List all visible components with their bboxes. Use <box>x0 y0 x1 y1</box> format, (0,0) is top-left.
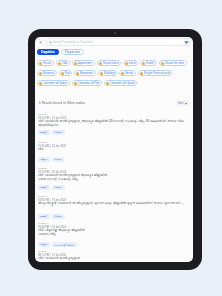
staticText: സ്ഥലം <box>54 186 63 189</box>
staticText: Apartment <box>78 61 93 65</box>
button[interactable]: House for rent <box>159 60 187 66</box>
button[interactable]: Back <box>38 40 43 45</box>
staticText: Property <box>38 250 48 253</box>
button[interactable]: സ്ഥലം <box>52 214 65 219</box>
staticText: 10:05 AM | 22 Jan 2024 <box>38 144 67 148</box>
staticText: 09:40 PM | 18 Jan 2024 <box>38 225 67 229</box>
staticText: Commercial House <box>110 81 135 85</box>
staticText: House for rent <box>165 61 185 65</box>
button[interactable]: Property <box>35 167 193 191</box>
staticText: 07:53 PM | 20 Jan 2024 <box>38 170 67 174</box>
staticText: Sort <box>178 101 184 105</box>
staticText: വില്പന <box>40 158 48 161</box>
staticText: Villa <box>62 61 68 65</box>
staticText: അപ്പാർട്ട്മെന്റ് വാങ്ങാൻ താൽപ്പര്യമുണ്ട്… <box>38 201 188 205</box>
button[interactable]: വില്പന <box>38 157 50 162</box>
button[interactable]: Business <box>37 70 57 76</box>
staticText: Business <box>43 71 55 75</box>
staticText: Property <box>38 195 48 198</box>
button[interactable]: Single Portion Land <box>138 70 172 76</box>
staticText: House <box>43 61 52 65</box>
staticText: Single Portion Land <box>144 71 170 75</box>
staticText: Properties <box>65 50 80 54</box>
button[interactable]: Commercial Space <box>37 80 70 86</box>
staticText: 07:23 PM | 23 Jan 2024 <box>38 116 67 120</box>
staticText: Search Properties or Enquiries <box>53 40 93 44</box>
button[interactable]: Villa <box>56 60 70 66</box>
button[interactable]: House Land <box>97 60 121 66</box>
button[interactable]: ബജറ്റ് <box>38 214 50 219</box>
staticText: Commercial Plot <box>78 81 100 85</box>
button[interactable]: Apartment <box>72 60 95 66</box>
staticText: 04:05 PM | 19 Jan 2024 <box>38 198 67 202</box>
button[interactable]: വാടക <box>52 157 64 162</box>
button[interactable]: Land <box>123 60 138 66</box>
button[interactable]: Basement <box>74 70 96 76</box>
staticText: വീട് <box>38 147 44 150</box>
staticText: 10 സെന്റ് സ്ഥലം <box>54 243 75 246</box>
staticText: വില്പന <box>40 243 48 246</box>
staticText: Commercial Space <box>43 81 68 85</box>
button[interactable]: Enquiries <box>37 49 59 55</box>
button[interactable]: Search Properties or Enquiries <box>46 38 190 46</box>
button[interactable]: Property <box>35 113 193 136</box>
staticText: വീട് വാങ്ങാൻ താൽപ്പര്യമുണ്ട് <box>38 256 80 260</box>
button[interactable]: Commercial Plot <box>72 80 102 86</box>
button[interactable]: Sort <box>176 100 189 106</box>
staticText: Enquiries <box>41 50 55 54</box>
staticText: Property <box>38 113 48 116</box>
staticText: ബജറ്റ് <box>40 186 48 189</box>
staticText: വാടക <box>54 158 62 161</box>
staticText: Property <box>38 141 48 144</box>
staticText: Property <box>38 167 48 170</box>
staticText: Hostel <box>146 61 155 65</box>
button[interactable]: Resort <box>119 70 136 76</box>
button[interactable]: Commercial House <box>104 80 137 86</box>
button[interactable]: വില്പന <box>38 242 50 247</box>
button[interactable]: ബജറ്റ് <box>38 185 50 190</box>
staticText: 08:12 PM | 16 Jan 2024 <box>38 253 67 257</box>
button[interactable]: Flat <box>59 70 72 76</box>
staticText: Land <box>129 61 136 65</box>
button[interactable]: Property <box>35 250 193 262</box>
staticText: Resort <box>125 71 134 75</box>
staticText: Basement <box>80 71 94 75</box>
button[interactable]: 10 സെന്റ് സ്ഥലം <box>52 242 77 247</box>
staticText: വീട് വാങ്ങാൻ താൽപ്പര്യമുണ്ട് ആലപ്പുഴ ജില… <box>38 173 108 181</box>
staticText: Building <box>104 71 115 75</box>
button[interactable]: Property <box>35 141 193 163</box>
button[interactable]: Property <box>35 195 193 219</box>
staticText: സ്ഥലം <box>54 215 63 218</box>
staticText: സ്ഥലം <box>54 131 63 134</box>
button[interactable]: Property <box>35 222 193 248</box>
button[interactable]: Hostel <box>140 60 157 66</box>
staticText: Flat <box>65 71 70 75</box>
staticText: Property <box>38 222 48 225</box>
staticText: ബജറ്റ് <box>40 215 48 218</box>
button[interactable]: Properties <box>61 49 84 55</box>
staticText: ബജറ്റ് <box>40 131 48 134</box>
staticText: വീട് വില്പനയ്ക്ക് ആലപ്പുഴ ജില്ലയിൽ പത്തന… <box>38 228 85 236</box>
button[interactable]: സ്ഥലം <box>52 185 65 190</box>
button[interactable]: സ്ഥലം <box>52 130 65 135</box>
button[interactable]: House <box>37 60 54 66</box>
other: Filter <box>185 41 188 44</box>
staticText: House Land <box>103 61 119 65</box>
button[interactable]: ബജറ്റ് <box>38 130 50 135</box>
staticText: വീട് വാങ്ങാൻ താൽപ്പര്യമുണ്ട്, ആലപ്പുഴ ജി… <box>38 119 184 127</box>
staticText: 6 Results found in 50km radius <box>39 101 86 105</box>
button[interactable]: Building <box>98 70 117 76</box>
